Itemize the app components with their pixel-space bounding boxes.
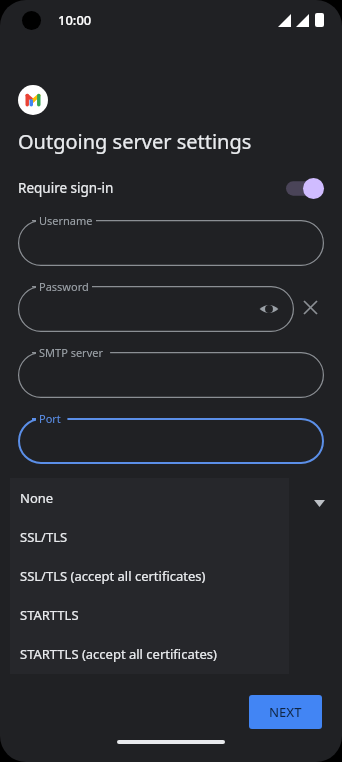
staticText: Port [39, 411, 61, 426]
staticText: Require sign-in [18, 179, 114, 197]
staticText: None [18, 502, 54, 521]
staticText: SSL/TLS [20, 528, 68, 546]
button[interactable]: Show password [256, 296, 282, 322]
staticText: Outgoing server settings [18, 128, 252, 155]
button[interactable]: SSL/TLS [10, 517, 289, 556]
staticText: SSL/TLS (accept all certificates) [20, 567, 206, 585]
button[interactable] [18, 418, 324, 464]
staticText: Password [39, 279, 89, 294]
button[interactable]: Require sign-in [0, 171, 342, 205]
button[interactable]: NEXT [249, 695, 322, 729]
button[interactable]: Show password [18, 286, 294, 332]
button[interactable] [18, 220, 324, 266]
staticText: SMTP server [39, 345, 103, 360]
staticText: STARTTLS [20, 606, 79, 624]
button[interactable]: Security type [0, 476, 342, 521]
staticText: None [20, 489, 54, 507]
staticText: NEXT [269, 703, 302, 721]
button[interactable]: STARTTLS [10, 595, 289, 634]
staticText: STARTTLS (accept all certificates) [20, 645, 217, 663]
staticText: Username [39, 213, 93, 228]
button[interactable]: Clear password [296, 293, 324, 321]
staticText: 10:00 [58, 11, 92, 29]
button[interactable] [18, 352, 324, 398]
button[interactable]: SSL/TLS (accept all certificates) [10, 556, 289, 595]
button[interactable]: STARTTLS (accept all certificates) [10, 634, 289, 673]
button[interactable]: None [10, 478, 289, 517]
